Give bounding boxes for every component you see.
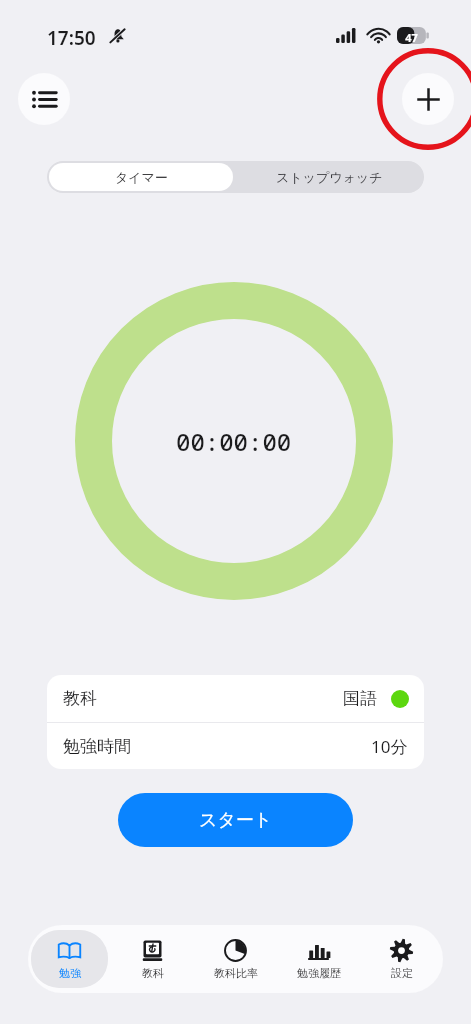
- button[interactable]: Add: [402, 73, 454, 125]
- staticText: 10分: [371, 735, 408, 758]
- staticText: 教科比率: [214, 966, 258, 980]
- staticText: 勉強履歴: [297, 966, 341, 980]
- button[interactable]: タイマー: [49, 163, 233, 191]
- button[interactable]: 勉強時間: [47, 723, 424, 769]
- staticText: 勉強: [59, 966, 81, 980]
- staticText: 勉強時間: [63, 736, 131, 757]
- button[interactable]: ストップウォッチ: [235, 161, 424, 193]
- staticText: 00:00:00: [176, 425, 292, 458]
- button[interactable]: 教科比率: [197, 930, 274, 988]
- staticText: 17:50: [47, 25, 96, 51]
- button[interactable]: List: [18, 73, 70, 125]
- button[interactable]: 教科: [47, 675, 424, 722]
- button[interactable]: 勉強: [31, 930, 108, 988]
- button[interactable]: 設定: [363, 930, 440, 988]
- staticText: スタート: [199, 809, 273, 832]
- staticText: 国語: [343, 688, 377, 709]
- staticText: 教科: [63, 688, 97, 709]
- button[interactable]: 勉強履歴: [280, 930, 357, 988]
- button[interactable]: スタート: [118, 793, 353, 847]
- staticText: 教科: [142, 966, 164, 980]
- staticText: ストップウォッチ: [276, 169, 383, 185]
- button[interactable]: 教科: [114, 930, 191, 988]
- staticText: 設定: [391, 966, 413, 980]
- staticText: 47: [399, 30, 424, 45]
- staticText: タイマー: [115, 169, 168, 185]
